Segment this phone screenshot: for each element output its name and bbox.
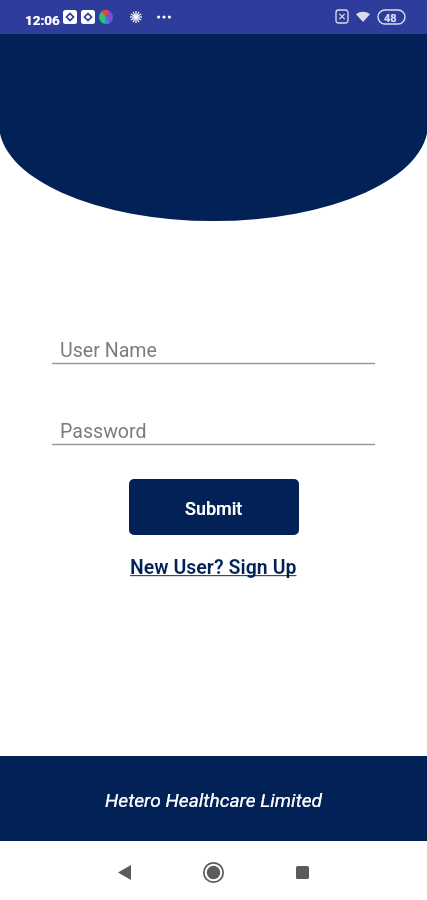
staticText: 48 xyxy=(384,12,397,25)
staticText: 12:06 xyxy=(25,12,60,28)
button[interactable]: Back xyxy=(100,848,148,896)
button[interactable]: New User? Sign Up xyxy=(124,552,303,583)
staticText: Password xyxy=(60,420,147,443)
staticText: Hetero Healthcare Limited xyxy=(105,789,323,812)
staticText: Submit xyxy=(185,498,243,519)
staticText: User Name xyxy=(60,339,157,362)
button[interactable]: User Name xyxy=(52,326,375,364)
button[interactable]: Home xyxy=(189,848,237,896)
button[interactable]: Submit xyxy=(129,479,299,535)
button[interactable]: Password xyxy=(52,407,375,445)
staticText: New User? Sign Up xyxy=(130,556,297,579)
button[interactable]: Recents xyxy=(278,848,326,896)
